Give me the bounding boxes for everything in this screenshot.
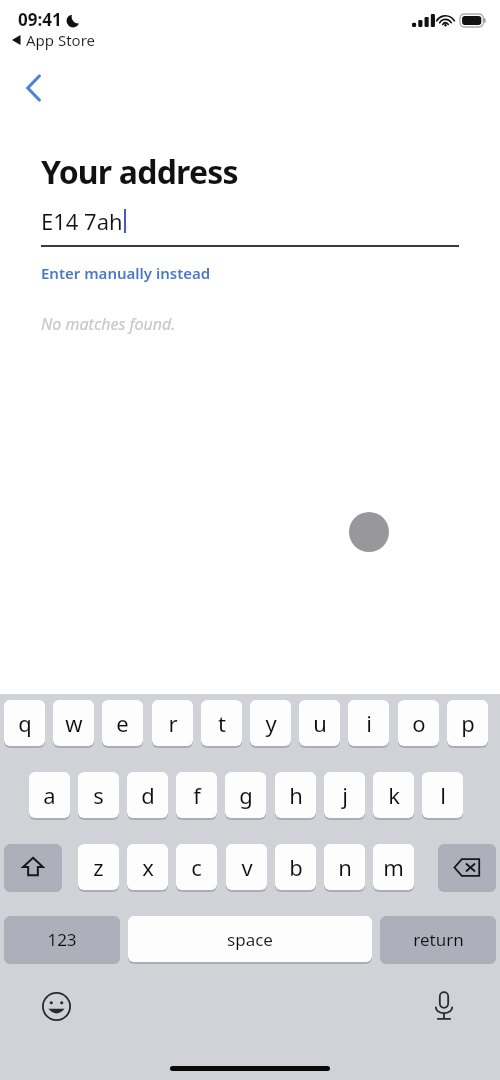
button[interactable]: Dictation [424, 986, 464, 1026]
staticText: w [65, 708, 83, 738]
staticText: Your address [41, 150, 238, 194]
staticText: r [168, 708, 178, 738]
staticText: g [239, 780, 253, 810]
staticText: return [413, 928, 464, 951]
staticText: i [366, 708, 372, 738]
staticText: space [227, 928, 273, 951]
button[interactable]: y [250, 700, 291, 746]
button[interactable]: z [78, 844, 119, 890]
button[interactable]: return [380, 916, 496, 962]
button[interactable]: Emoji [36, 986, 76, 1026]
button[interactable]: v [226, 844, 267, 890]
staticText: x [142, 852, 154, 882]
staticText: Enter manually instead [41, 263, 211, 283]
staticText: 123 [47, 928, 77, 951]
button[interactable]: e [102, 700, 143, 746]
button[interactable]: q [4, 700, 45, 746]
staticText: k [388, 780, 400, 810]
button[interactable] [438, 844, 496, 890]
staticText: j [342, 780, 348, 810]
staticText: s [93, 780, 104, 810]
button[interactable]: h [275, 772, 316, 818]
button[interactable]: u [299, 700, 340, 746]
button[interactable]: k [373, 772, 414, 818]
button[interactable]: Enter manually instead [41, 263, 211, 283]
staticText: c [191, 852, 202, 882]
button[interactable]: c [176, 844, 217, 890]
button[interactable]: a [29, 772, 70, 818]
staticText: b [289, 852, 303, 882]
staticText: f [193, 780, 201, 810]
staticText: z [93, 852, 104, 882]
button[interactable]: r [152, 700, 193, 746]
staticText: y [265, 708, 277, 738]
button[interactable]: s [78, 772, 119, 818]
staticText: App Store [26, 30, 96, 50]
staticText: h [289, 780, 303, 810]
button[interactable]: l [422, 772, 463, 818]
staticText: d [141, 780, 155, 810]
button[interactable]: g [225, 772, 266, 818]
button[interactable]: Back [14, 68, 54, 108]
button[interactable]: f [176, 772, 217, 818]
staticText: v [241, 852, 253, 882]
staticText: E14 7ah [41, 206, 123, 236]
button[interactable]: j [324, 772, 365, 818]
staticText: n [338, 852, 352, 882]
staticText: q [18, 708, 32, 738]
staticText: o [412, 708, 426, 738]
staticText: e [116, 708, 129, 738]
button[interactable]: t [201, 700, 242, 746]
staticText: No matches found. [41, 313, 176, 335]
button[interactable]: m [373, 844, 414, 890]
button[interactable]: o [398, 700, 439, 746]
button[interactable]: p [447, 700, 488, 746]
button[interactable]: i [348, 700, 389, 746]
staticText: 09:41 [18, 8, 62, 31]
button[interactable]: n [324, 844, 365, 890]
button[interactable]: 123 [4, 916, 120, 962]
staticText: p [461, 708, 475, 738]
button[interactable]: b [275, 844, 316, 890]
button[interactable] [4, 844, 62, 890]
staticText: m [383, 852, 404, 882]
button[interactable]: w [53, 700, 94, 746]
staticText: l [440, 780, 446, 810]
button[interactable]: d [127, 772, 168, 818]
staticText: a [43, 780, 56, 810]
button[interactable]: x [127, 844, 168, 890]
button[interactable]: space [128, 916, 372, 962]
staticText: t [218, 708, 226, 738]
staticText: u [313, 708, 327, 738]
